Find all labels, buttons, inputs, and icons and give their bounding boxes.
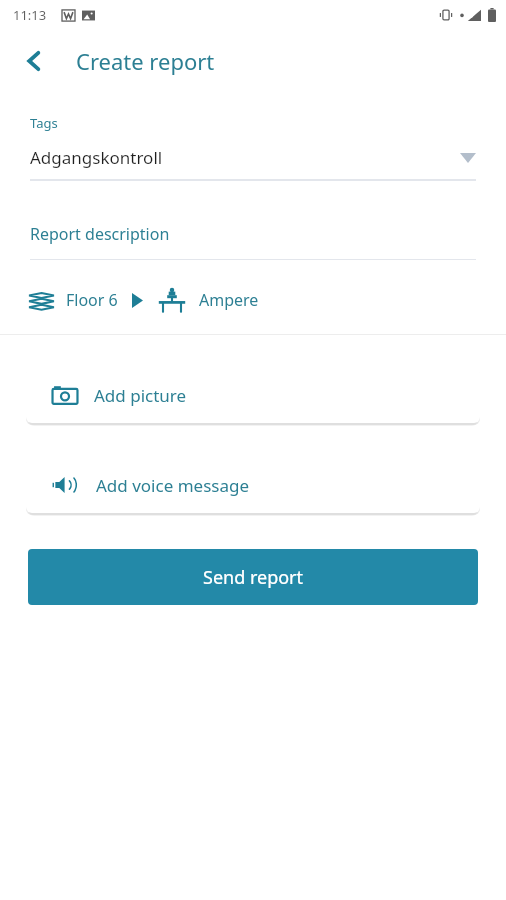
button[interactable]: Send report bbox=[28, 549, 478, 605]
staticText: Send report bbox=[203, 565, 304, 590]
staticText: Add voice message bbox=[96, 474, 250, 497]
staticText: Report description bbox=[30, 223, 170, 245]
staticText: Floor 6 bbox=[66, 289, 118, 311]
button[interactable]: Floor 6 bbox=[28, 278, 478, 322]
button[interactable]: Adgangskontroll bbox=[30, 146, 476, 169]
staticText: Ampere bbox=[199, 289, 259, 311]
button[interactable]: Add voice message bbox=[26, 457, 480, 513]
staticText: 11:13 bbox=[13, 6, 47, 24]
staticText: Adgangskontroll bbox=[30, 146, 163, 169]
staticText: Add picture bbox=[94, 384, 187, 407]
button[interactable]: Report description bbox=[30, 223, 476, 260]
staticText: Create report bbox=[76, 46, 215, 76]
staticText: Tags bbox=[30, 114, 58, 132]
button[interactable]: Back bbox=[8, 35, 60, 87]
button[interactable]: Add picture bbox=[26, 367, 480, 423]
